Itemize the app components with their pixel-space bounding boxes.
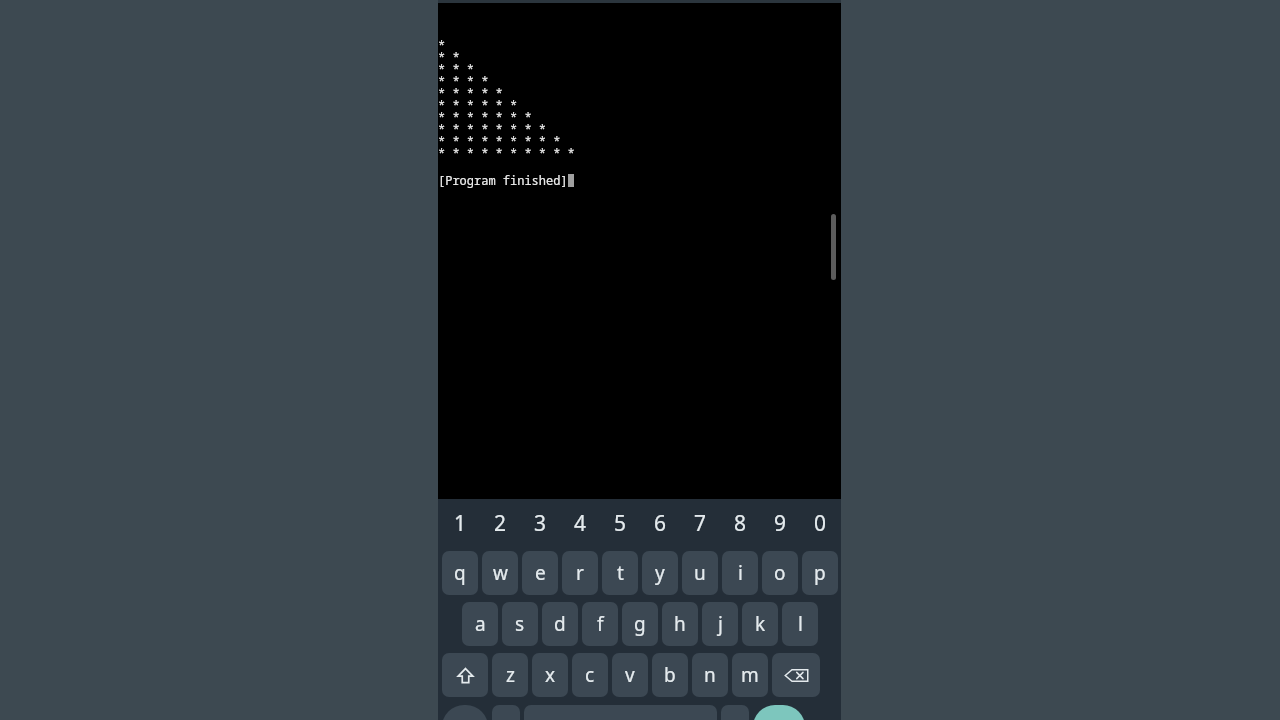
- button[interactable]: h: [662, 602, 698, 646]
- staticText: 9: [774, 509, 787, 538]
- staticText: 0: [814, 509, 827, 538]
- button[interactable]: p: [802, 551, 838, 595]
- button[interactable]: i: [722, 551, 758, 595]
- staticText: d: [554, 611, 566, 637]
- button[interactable]: v: [612, 653, 648, 697]
- button[interactable]: n: [692, 653, 728, 697]
- staticText: n: [704, 662, 716, 688]
- button[interactable]: r: [562, 551, 598, 595]
- button[interactable]: 5: [602, 501, 638, 545]
- staticText: c: [585, 662, 595, 688]
- staticText: 2: [494, 509, 507, 538]
- button[interactable]: 0: [802, 501, 838, 545]
- staticText: k: [755, 611, 766, 637]
- button[interactable]: 2: [482, 501, 518, 545]
- staticText: b: [664, 662, 676, 688]
- button[interactable]: 3: [522, 501, 558, 545]
- staticText: p: [814, 560, 826, 586]
- button[interactable]: y: [642, 551, 678, 595]
- button[interactable]: s: [502, 602, 538, 646]
- staticText: 7: [694, 509, 707, 538]
- button[interactable]: a: [462, 602, 498, 646]
- button[interactable]: 7: [682, 501, 718, 545]
- button[interactable]: k: [742, 602, 778, 646]
- staticText: r: [576, 560, 584, 586]
- button[interactable]: Shift: [442, 653, 488, 697]
- staticText: y: [655, 560, 665, 586]
- staticText: g: [634, 611, 646, 637]
- staticText: *: [438, 37, 446, 49]
- staticText: 1: [454, 509, 467, 538]
- button[interactable]: z: [492, 653, 528, 697]
- staticText: * *: [438, 49, 460, 61]
- button[interactable]: j: [702, 602, 738, 646]
- staticText: f: [597, 611, 604, 637]
- staticText: v: [625, 662, 635, 688]
- button[interactable]: o: [762, 551, 798, 595]
- button[interactable]: c: [572, 653, 608, 697]
- staticText: * * *: [438, 61, 475, 73]
- staticText: 8: [734, 509, 747, 538]
- staticText: a: [475, 611, 486, 637]
- staticText: 3: [534, 509, 547, 538]
- button[interactable]: q: [442, 551, 478, 595]
- staticText: * * * * * *: [438, 97, 518, 109]
- button[interactable]: t: [602, 551, 638, 595]
- button[interactable]: Symbols: [442, 705, 488, 720]
- button[interactable]: Backspace: [772, 653, 820, 697]
- staticText: [Program finished]: [438, 172, 568, 188]
- button[interactable]: e: [522, 551, 558, 595]
- button[interactable]: Comma: [492, 705, 520, 720]
- staticText: x: [545, 662, 556, 688]
- staticText: * * * * * * * * * *: [438, 145, 575, 157]
- staticText: t: [617, 560, 624, 586]
- button[interactable]: d: [542, 602, 578, 646]
- staticText: i: [738, 560, 743, 586]
- button[interactable]: 8: [722, 501, 758, 545]
- staticText: w: [493, 560, 508, 586]
- staticText: m: [741, 662, 759, 688]
- button[interactable]: 6: [642, 501, 678, 545]
- staticText: j: [718, 611, 723, 637]
- staticText: z: [506, 662, 515, 688]
- button[interactable]: 9: [762, 501, 798, 545]
- staticText: * * * * * * * * *: [438, 133, 561, 145]
- button[interactable]: 1: [442, 501, 478, 545]
- staticText: 6: [654, 509, 667, 538]
- staticText: e: [535, 560, 546, 586]
- staticText: * * * *: [438, 73, 489, 85]
- staticText: * * * * * * *: [438, 109, 532, 121]
- staticText: s: [515, 611, 525, 637]
- staticText: 4: [574, 509, 587, 538]
- staticText: u: [694, 560, 706, 586]
- button[interactable]: Period: [721, 705, 749, 720]
- button[interactable]: f: [582, 602, 618, 646]
- staticText: l: [798, 611, 803, 637]
- staticText: * * * * * * * *: [438, 121, 547, 133]
- staticText: * * * * *: [438, 85, 503, 97]
- button[interactable]: b: [652, 653, 688, 697]
- staticText: h: [674, 611, 686, 637]
- button[interactable]: l: [782, 602, 818, 646]
- staticText: o: [774, 560, 786, 586]
- button[interactable]: m: [732, 653, 768, 697]
- staticText: q: [454, 560, 466, 586]
- button[interactable]: x: [532, 653, 568, 697]
- button[interactable]: u: [682, 551, 718, 595]
- button[interactable]: 4: [562, 501, 598, 545]
- button[interactable]: w: [482, 551, 518, 595]
- staticText: 5: [614, 509, 627, 538]
- button[interactable]: g: [622, 602, 658, 646]
- button[interactable]: Enter: [753, 705, 805, 720]
